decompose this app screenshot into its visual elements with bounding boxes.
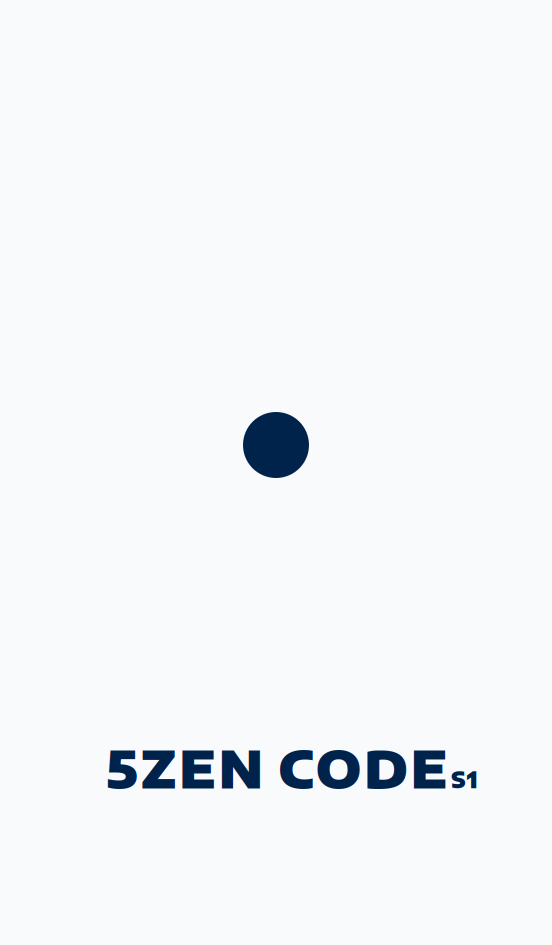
staticText: S1 [451,765,477,793]
staticText: 5ZEN CODE [106,735,448,800]
